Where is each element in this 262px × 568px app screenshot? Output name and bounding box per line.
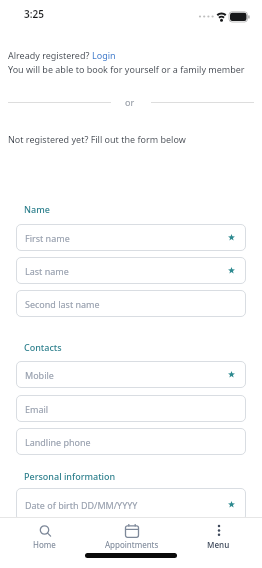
staticText: Email bbox=[25, 403, 49, 415]
button[interactable]: Appointments bbox=[88, 517, 175, 568]
staticText: or bbox=[125, 96, 135, 108]
staticText: Already registered? bbox=[8, 49, 92, 61]
staticText: Mobile bbox=[25, 369, 54, 381]
staticText: Personal information bbox=[24, 470, 116, 482]
staticText: Second last name bbox=[25, 298, 100, 310]
staticText: Appointments bbox=[105, 539, 159, 550]
staticText: Home bbox=[33, 539, 56, 550]
staticText: Name bbox=[24, 203, 50, 215]
button[interactable]: First name bbox=[16, 224, 246, 251]
staticText: You will be able to book for yourself or… bbox=[8, 63, 245, 75]
button[interactable]: Mobile bbox=[16, 361, 246, 388]
button[interactable]: Login bbox=[92, 49, 116, 61]
staticText: Last name bbox=[25, 265, 69, 277]
button[interactable]: Date of birth DD/MM/YYYY bbox=[16, 488, 246, 521]
staticText: Contacts bbox=[24, 341, 62, 353]
staticText: First name bbox=[25, 232, 70, 244]
button[interactable]: Email bbox=[16, 395, 246, 422]
button[interactable]: Last name bbox=[16, 257, 246, 284]
staticText: Landline phone bbox=[25, 436, 91, 448]
staticText: Date of birth DD/MM/YYYY bbox=[25, 499, 138, 511]
staticText: Not registered yet? Fill out the form be… bbox=[8, 133, 186, 145]
button[interactable]: Home bbox=[0, 517, 88, 568]
button[interactable]: Menu bbox=[175, 517, 262, 568]
staticText: 3:25 bbox=[24, 7, 44, 21]
button[interactable]: Landline phone bbox=[16, 428, 246, 455]
button[interactable]: Second last name bbox=[16, 290, 246, 317]
staticText: Menu bbox=[207, 539, 230, 550]
